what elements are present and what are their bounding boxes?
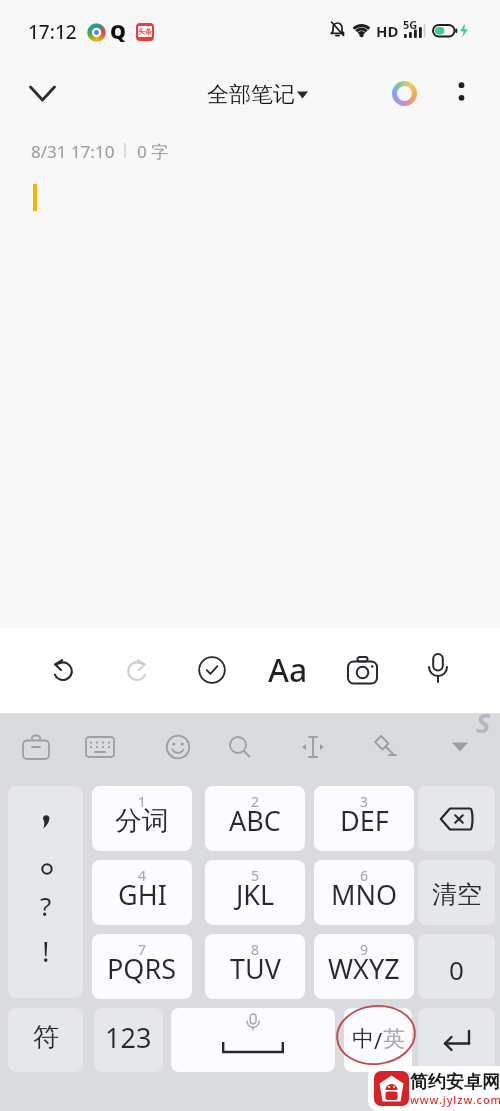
staticText: 2: [251, 792, 260, 811]
staticText: 清空: [432, 879, 482, 910]
button[interactable]: 全部笔记: [200, 75, 315, 113]
staticText: 6: [360, 866, 369, 885]
button[interactable]: 0: [418, 934, 495, 999]
button[interactable]: 5: [205, 860, 305, 925]
button[interactable]: 3: [314, 786, 414, 851]
button[interactable]: [361, 719, 409, 775]
staticText: 0 字: [137, 140, 169, 160]
staticText: 123: [105, 1019, 152, 1056]
button[interactable]: ?: [8, 786, 83, 998]
staticText: PQRS: [107, 950, 177, 987]
button[interactable]: 符: [8, 1008, 83, 1072]
button[interactable]: 清空: [418, 860, 495, 925]
button[interactable]: 中: [344, 1008, 412, 1072]
staticText: S: [476, 704, 491, 741]
button[interactable]: 8: [205, 934, 305, 999]
staticText: MNO: [331, 876, 398, 913]
button[interactable]: 2: [205, 786, 305, 851]
button[interactable]: [34, 642, 90, 698]
staticText: 简约安卓网: [410, 1071, 500, 1094]
button[interactable]: [18, 74, 66, 114]
button[interactable]: [410, 642, 466, 698]
button[interactable]: [171, 1008, 335, 1072]
button[interactable]: [418, 786, 495, 851]
staticText: /: [374, 1025, 383, 1055]
button[interactable]: [216, 719, 264, 775]
staticText: WXYZ: [328, 950, 400, 987]
button[interactable]: [76, 719, 124, 775]
staticText: 8: [251, 940, 260, 959]
staticText: HD: [376, 21, 399, 41]
staticText: TUV: [230, 950, 281, 987]
button[interactable]: [12, 719, 60, 775]
button[interactable]: [436, 719, 484, 775]
staticText: Aa: [268, 648, 308, 692]
staticText: Q: [110, 18, 126, 45]
staticText: 头条: [138, 27, 152, 36]
button[interactable]: 9: [314, 934, 414, 999]
button[interactable]: 1: [92, 786, 192, 851]
button[interactable]: [289, 719, 337, 775]
staticText: 中: [352, 1025, 374, 1053]
staticText: 7: [138, 940, 147, 959]
staticText: 符: [33, 1021, 59, 1054]
button[interactable]: [418, 1008, 495, 1072]
button[interactable]: [154, 719, 202, 775]
staticText: 全部笔记: [207, 81, 295, 109]
staticText: JKL: [236, 876, 275, 913]
staticText: ?: [40, 888, 52, 923]
staticText: 1: [138, 792, 147, 811]
button[interactable]: [110, 642, 166, 698]
staticText: ABC: [229, 802, 281, 839]
staticText: 17:12: [28, 19, 77, 45]
staticText: 4: [138, 866, 147, 885]
staticText: DEF: [340, 802, 389, 839]
staticText: 8/31 17:10: [31, 140, 115, 160]
staticText: 9: [360, 940, 369, 959]
button[interactable]: 123: [94, 1008, 163, 1072]
button[interactable]: Aa: [260, 642, 316, 698]
button[interactable]: 4: [92, 860, 192, 925]
button[interactable]: [334, 642, 390, 698]
staticText: www.jylzw.com: [410, 1092, 500, 1107]
button[interactable]: [386, 75, 423, 112]
staticText: 分词: [115, 804, 169, 838]
button[interactable]: 7: [92, 934, 192, 999]
staticText: GHI: [118, 876, 167, 913]
staticText: 0: [449, 952, 464, 987]
staticText: !: [42, 932, 50, 970]
staticText: 3: [360, 792, 369, 811]
staticText: 5: [251, 866, 260, 885]
staticText: 英: [383, 1025, 405, 1053]
staticText: 5G: [403, 17, 418, 32]
button[interactable]: 6: [314, 860, 414, 925]
button[interactable]: [184, 642, 240, 698]
button[interactable]: [444, 75, 478, 109]
